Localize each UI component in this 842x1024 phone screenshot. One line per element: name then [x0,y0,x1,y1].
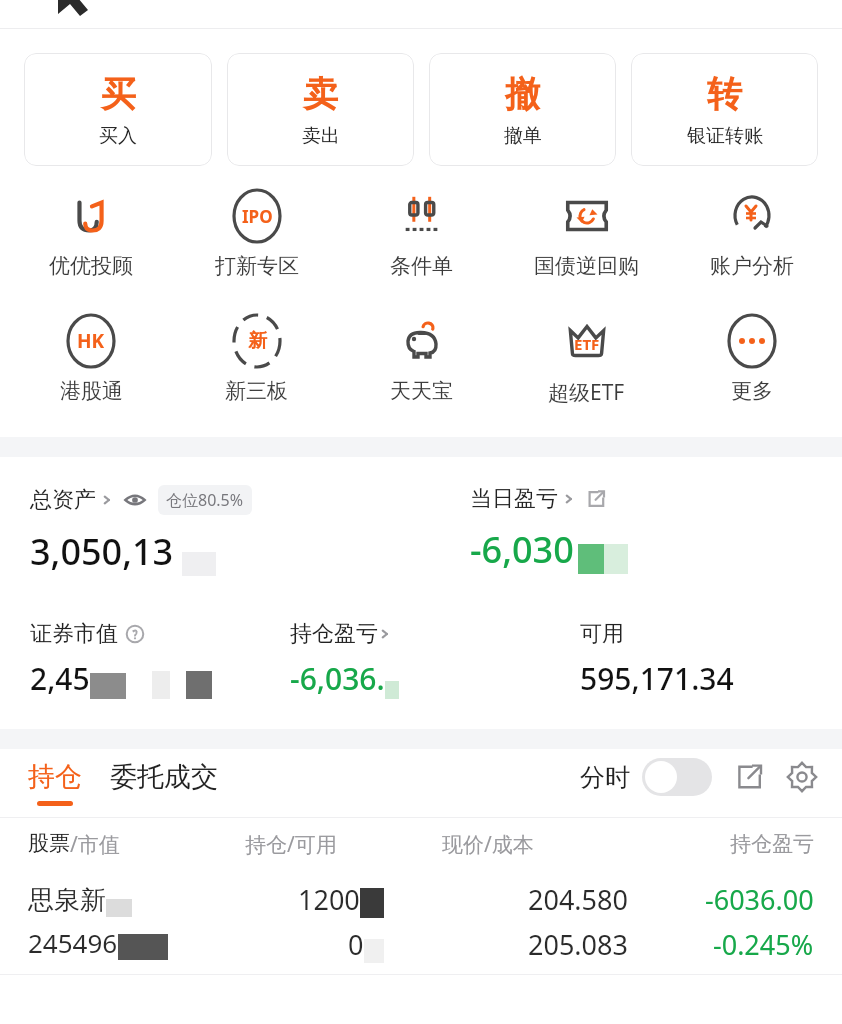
staticText: /市值 [70,830,120,859]
staticText: 现价/成本 [442,830,628,859]
other: Hide amounts [124,489,146,511]
staticText: 天天宝 [390,378,453,404]
staticText: 持仓盈亏 [628,831,814,857]
staticText: 可用 [580,620,624,648]
button[interactable]: Share [734,762,764,792]
staticText: 新三板 [225,378,288,404]
button[interactable]: 天天宝 [339,309,504,408]
staticText: 撤单 [504,124,542,148]
staticText: 持仓盈亏 [290,620,378,648]
button[interactable]: 持仓 [28,760,82,806]
staticText: 总资产 [30,486,96,514]
staticText: 2,45 [30,658,90,699]
button[interactable]: 买 [24,53,212,166]
staticText: 卖 [303,72,338,116]
button[interactable]: 转 [631,53,818,166]
button[interactable]: 总资产 [30,485,252,515]
staticText: 买 [101,72,136,116]
staticText: 优优投顾 [49,253,133,279]
staticText: 股票 [28,830,70,856]
staticText: 分时 [580,762,630,793]
staticText: 卖出 [302,124,340,148]
staticText: 持仓 [28,760,82,794]
button[interactable]: 账户分析 [669,184,834,283]
button[interactable]: IPO [174,184,339,283]
other: Help [126,625,144,643]
button[interactable]: 优优投顾 [8,184,174,283]
staticText: 超级ETF [548,378,625,407]
staticText: 204.580 [528,881,628,918]
button[interactable]: 当日盈亏 [470,485,606,513]
staticText: 205.083 [528,926,628,963]
button[interactable]: Settings [786,761,818,793]
button[interactable]: 新 [174,309,339,408]
staticText: -6036.00 [705,881,814,918]
staticText: 国债逆回购 [534,253,639,279]
staticText: 仓位80.5% [166,489,244,511]
staticText: 595,171.34 [580,658,734,699]
button[interactable]: 条件单 [339,184,504,283]
staticText: 3,050,13 [30,527,174,576]
staticText: 委托成交 [110,760,218,794]
staticText: 账户分析 [710,253,794,279]
staticText: 1200 [298,881,360,918]
staticText: 新 [248,329,267,353]
staticText: 港股通 [60,378,123,404]
staticText: 条件单 [390,253,453,279]
staticText: 撤 [505,72,540,116]
staticText: 当日盈亏 [470,485,558,513]
staticText: ETF [574,334,600,354]
staticText: IPO [242,205,273,228]
other: Open detail [586,489,606,509]
staticText: 银证转账 [687,124,763,148]
button[interactable]: 委托成交 [110,760,218,806]
staticText: 0 [348,926,364,963]
button[interactable]: ETF [504,309,669,411]
staticText: 转 [707,72,742,116]
staticText: 持仓/可用 [245,830,442,859]
button[interactable]: Toggle intraday [642,758,712,796]
staticText: -6,036. [290,658,385,699]
staticText: 买入 [99,124,137,148]
button[interactable]: 更多 [669,309,834,408]
staticText: 245496 [28,925,118,960]
staticText: 证券市值 [30,620,118,648]
button[interactable]: 持仓盈亏 [290,620,392,648]
button[interactable]: 卖 [227,53,414,166]
staticText: -0.245% [713,926,814,963]
staticText: 思泉新 [28,884,106,917]
button[interactable]: 国债逆回购 [504,184,669,283]
staticText: 更多 [731,378,773,404]
staticText: HK [77,328,105,354]
button[interactable]: 撤 [429,53,616,166]
staticText: -6,030 [470,525,574,574]
staticText: 打新专区 [215,253,299,279]
button[interactable]: 思泉新 [0,870,842,974]
button[interactable]: HK [8,309,174,408]
